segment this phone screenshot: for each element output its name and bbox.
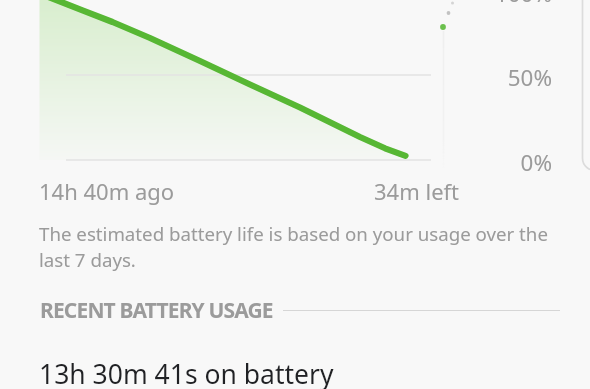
staticText: 34m left: [374, 176, 460, 206]
staticText: 100%: [392, 0, 552, 9]
staticText: RECENT BATTERY USAGE: [40, 296, 273, 325]
button[interactable]: Battery level graph: [0, 0, 590, 210]
staticText: The estimated battery life is based on y…: [39, 221, 555, 273]
staticText: 50%: [392, 62, 552, 93]
button[interactable]: 13h 30m 41s on battery: [0, 332, 590, 389]
staticText: 14h 40m ago: [39, 176, 175, 206]
staticText: 0%: [392, 147, 552, 178]
staticText: 13h 30m 41s on battery: [39, 356, 334, 389]
